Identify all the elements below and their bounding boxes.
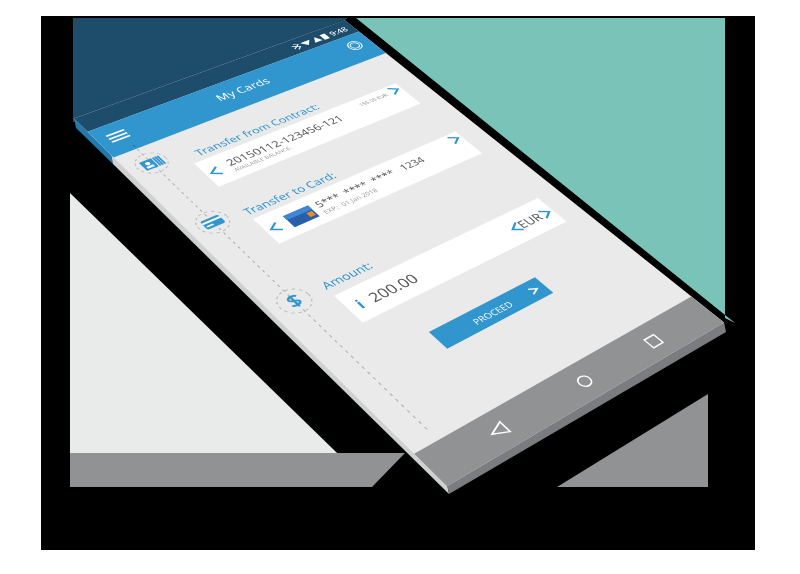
button[interactable]: Step icon: [187, 206, 238, 238]
button[interactable]: Open navigation menu: [96, 123, 140, 150]
staticText: 155.00 EUR: [357, 92, 390, 107]
staticText: EUR: [512, 210, 547, 231]
staticText: 20150112-123456-121: [222, 112, 347, 168]
staticText: i: [350, 295, 370, 312]
staticText: Transfer to Card:: [239, 169, 339, 217]
button[interactable]: 5*** **** **** 1234: [253, 132, 482, 244]
staticText: EXP.: 01 Jan 2018: [321, 187, 381, 216]
staticText: 5*** **** **** 1234: [311, 154, 429, 210]
button[interactable]: Step icon: [268, 283, 321, 319]
button[interactable]: PROCEED: [429, 277, 553, 349]
staticText: Transfer from Contract:: [191, 101, 323, 158]
staticText: 9:48: [326, 25, 351, 38]
staticText: Amount:: [317, 258, 376, 292]
button[interactable]: Back: [476, 414, 520, 447]
button[interactable]: Step icon: [127, 148, 176, 178]
button[interactable]: Help: [338, 36, 372, 55]
button[interactable]: Recent apps: [632, 327, 673, 356]
button[interactable]: i: [334, 198, 567, 323]
staticText: PROCEED: [469, 298, 516, 326]
button[interactable]: 20150112-123456-121: [194, 83, 421, 187]
button[interactable]: Home: [562, 366, 605, 397]
staticText: My Cards: [211, 75, 274, 104]
staticText: 200.00: [363, 270, 423, 306]
staticText: AVAILABLE BALANCE:: [232, 145, 294, 173]
